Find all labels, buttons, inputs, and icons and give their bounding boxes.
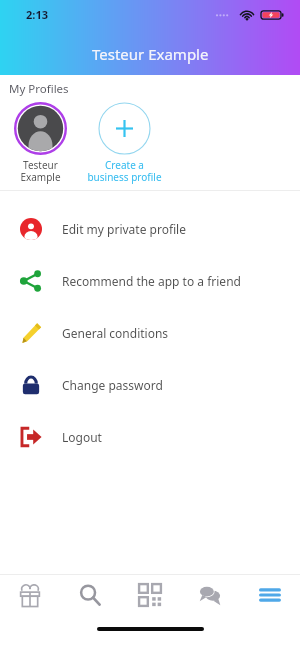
staticText: General conditions [62, 325, 169, 341]
staticText: Recommend the app to a friend [62, 273, 241, 289]
staticText: Testeur Example [20, 158, 61, 184]
button[interactable]: Messages [180, 575, 240, 615]
button[interactable]: Create a business profile [83, 102, 166, 184]
button[interactable]: Change password [0, 359, 300, 411]
staticText: Edit my private profile [62, 221, 186, 237]
staticText: My Profiles [9, 81, 69, 97]
button[interactable]: Gifts [0, 575, 60, 615]
staticText: Logout [62, 429, 102, 445]
staticText: Testeur Example [92, 44, 209, 64]
button[interactable]: Logout [0, 411, 300, 463]
staticText: Change password [62, 377, 163, 393]
button[interactable]: Search [60, 575, 120, 615]
button[interactable]: General conditions [0, 307, 300, 359]
button[interactable]: Edit my private profile [0, 203, 300, 255]
staticText: 2:13 [26, 7, 48, 22]
button[interactable]: Recommend the app to a friend [0, 255, 300, 307]
staticText: Create a business profile [87, 158, 162, 184]
button[interactable]: Menu [240, 575, 300, 615]
button[interactable]: Testeur Example [7, 102, 73, 184]
button[interactable]: Scan QR code [120, 575, 180, 615]
